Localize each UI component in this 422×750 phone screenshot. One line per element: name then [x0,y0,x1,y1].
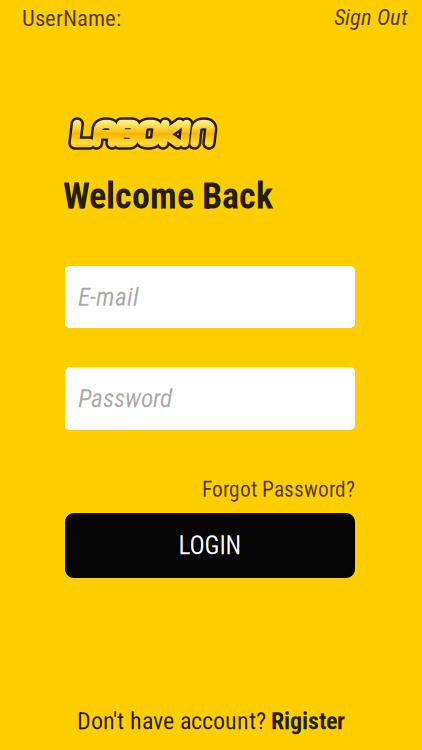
staticText: Welcome Back [63,175,273,217]
staticText: Rigister [271,707,345,735]
staticText: Forgot Password? [202,477,355,502]
staticText: E-mail [78,282,139,312]
staticText: Password [78,384,172,413]
staticText: LOGIN [178,531,241,560]
staticText: Don't have account? [77,707,266,735]
button[interactable]: Forgot Password? [202,477,355,502]
button[interactable]: Sign Out [334,4,408,31]
button[interactable]: Don't have account? [77,707,345,735]
button[interactable]: LOGIN [65,513,355,578]
staticText: UserName: [22,5,121,32]
staticText: Sign Out [334,4,408,31]
